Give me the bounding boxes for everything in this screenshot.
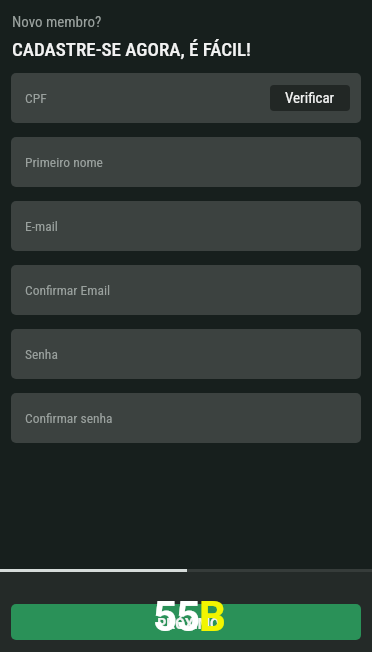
button[interactable]: Senha (11, 329, 361, 379)
staticText: E-mail (25, 218, 58, 234)
button[interactable]: Confirmar senha (11, 393, 361, 443)
staticText: PRÓXIMO (157, 616, 220, 632)
staticText: Senha (25, 346, 58, 362)
staticText: Novo membro? (12, 13, 102, 31)
button[interactable]: PRÓXIMO (11, 604, 361, 640)
button[interactable]: Verificar (270, 85, 350, 111)
staticText: Confirmar senha (25, 410, 113, 426)
button[interactable]: Confirmar Email (11, 265, 361, 315)
staticText: Verificar (285, 89, 335, 107)
staticText: CADASTRE-SE AGORA, É FÁCIL! (12, 38, 251, 60)
staticText: Primeiro nome (25, 154, 103, 170)
staticText: B (199, 592, 225, 641)
button[interactable]: E-mail (11, 201, 361, 251)
button[interactable]: Primeiro nome (11, 137, 361, 187)
staticText: Confirmar Email (25, 282, 111, 298)
other: Progresso do cadastro (0, 569, 372, 572)
staticText: CPF (25, 90, 47, 106)
staticText: 55 (153, 592, 199, 641)
button[interactable]: CPF (11, 73, 361, 123)
other: 55Bet (153, 592, 225, 641)
